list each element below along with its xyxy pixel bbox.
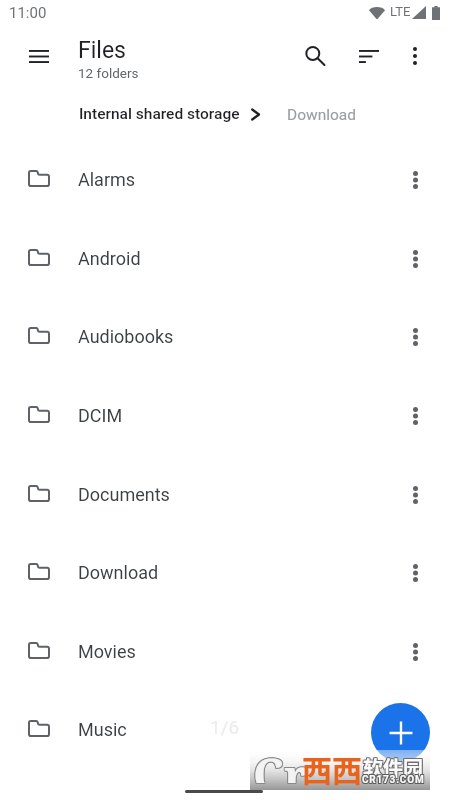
staticText: 软件园 [362,753,422,782]
staticText: 软件园 [363,752,423,781]
staticText: Documents [78,484,170,505]
staticText: Cr [253,744,308,784]
button[interactable]: Add [371,703,430,762]
staticText: Cr [252,744,307,784]
staticText: LTE [390,4,411,19]
staticText: Cr [253,742,308,782]
button[interactable]: Internal shared storage [79,105,240,123]
staticText: Cr [252,743,307,783]
staticText: CR173.COM [363,773,426,785]
staticText: Alarms [78,169,136,190]
staticText: CR173.COM [361,774,424,786]
staticText: 软件园 [363,753,423,782]
staticText: CR173.COM [361,773,424,785]
staticText: CR173.COM [363,774,426,786]
button[interactable]: Download [0,533,450,612]
staticText: Audiobooks [78,326,174,347]
button[interactable]: More options for Alarms [395,160,435,200]
button[interactable]: Download [287,106,357,124]
button[interactable]: Open navigation drawer [17,34,61,78]
staticText: 软件园 [363,754,423,783]
staticText: 12 folders [78,65,139,81]
staticText: Cr [253,743,308,783]
staticText: 软件园 [364,752,424,781]
staticText: Android [78,248,141,269]
staticText: 11:00 [9,4,47,22]
button[interactable]: Audiobooks [0,297,450,376]
staticText: CR173.COM [362,773,425,785]
staticText: CR173.COM [362,774,425,786]
staticText: Movies [78,641,136,662]
button[interactable]: More options for DCIM [395,396,435,436]
staticText: 软件园 [362,754,422,783]
button[interactable]: More options for Music [395,710,435,750]
button[interactable]: Movies [0,612,450,691]
staticText: CR173.COM [362,775,425,787]
button[interactable]: Documents [0,455,450,534]
button[interactable]: More options for Documents [395,475,435,515]
button[interactable]: Android [0,219,450,298]
staticText: Cr [254,743,309,783]
staticText: 软件园 [364,754,424,783]
button[interactable]: More options for Audiobooks [395,317,435,357]
staticText: Cr [254,744,309,784]
staticText: Cr [252,742,307,782]
button[interactable]: More options for Android [395,239,435,279]
button[interactable]: More options for Download [395,553,435,593]
staticText: Download [78,562,159,583]
staticText: 西西 [302,747,362,787]
staticText: 软件园 [364,753,424,782]
staticText: DCIM [78,405,123,426]
staticText: 软件园 [362,752,422,781]
button[interactable]: More options for Movies [395,632,435,672]
staticText: Cr [254,742,309,782]
button[interactable]: DCIM [0,376,450,455]
button[interactable]: Search [296,37,334,75]
staticText: 1/6 [210,716,240,738]
staticText: Files [78,37,126,64]
staticText: Music [78,719,127,740]
staticText: CR173.COM [363,775,426,787]
button[interactable]: Music [0,690,450,769]
staticText: CR173.COM [361,775,424,787]
button[interactable]: Alarms [0,140,450,219]
button[interactable]: Sort [350,37,388,75]
button[interactable]: More options [396,37,434,75]
